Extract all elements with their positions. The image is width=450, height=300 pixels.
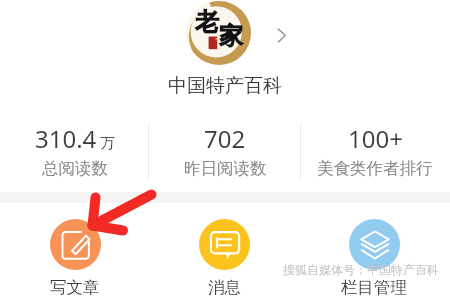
button[interactable]: Account avatar	[187, 1, 251, 65]
staticText: 写文章	[50, 277, 100, 298]
button[interactable]: Open profile	[269, 23, 293, 47]
button[interactable]: 消息	[149, 219, 299, 298]
button[interactable]: 702	[150, 122, 300, 179]
staticText: 中国特产百科	[0, 74, 450, 98]
button[interactable]: 100+	[300, 122, 450, 179]
staticText: 消息	[208, 277, 241, 298]
staticText: 100+	[348, 122, 403, 155]
staticText: 万	[100, 134, 115, 153]
button[interactable]: 栏目管理	[299, 219, 449, 298]
staticText: 310.4	[35, 122, 97, 155]
staticText: 昨日阅读数	[184, 158, 267, 179]
staticText: 搜狐自媒体号：中国特产百科	[283, 262, 439, 277]
staticText: 栏目管理	[341, 277, 407, 298]
staticText: 702	[204, 122, 246, 155]
staticText: 美食类作者排行	[317, 158, 433, 179]
button[interactable]: 写文章	[0, 219, 150, 298]
staticText: 总阅读数	[42, 158, 108, 179]
staticText: 家	[219, 21, 243, 51]
staticText: 老	[195, 7, 219, 37]
button[interactable]: 310.4	[0, 122, 150, 179]
